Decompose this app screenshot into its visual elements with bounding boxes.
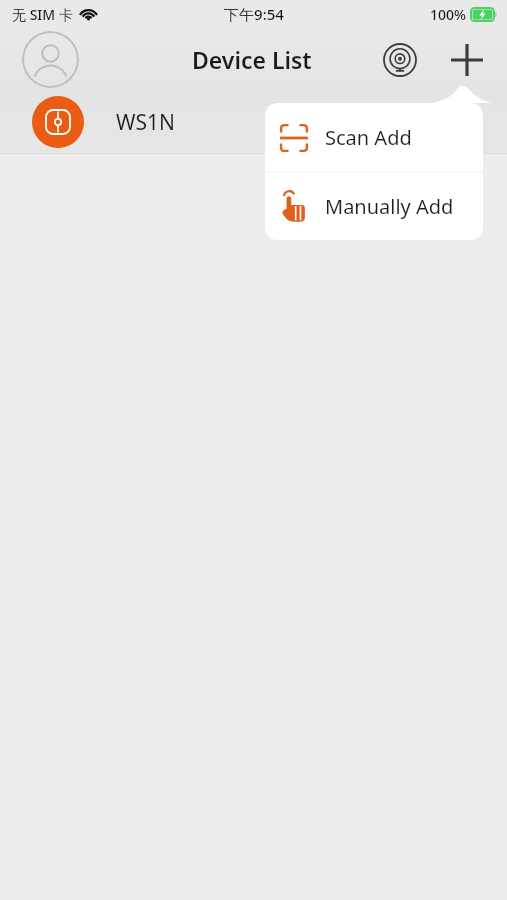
staticText: 下午9:54 [224, 4, 284, 24]
button[interactable]: Profile [22, 31, 79, 88]
button[interactable]: Scan Add [265, 103, 483, 172]
button[interactable]: WS1N [0, 91, 507, 153]
staticText: 100% [430, 5, 466, 24]
staticText: Device List [192, 44, 312, 75]
staticText: Scan Add [325, 124, 412, 151]
staticText: WS1N [116, 108, 176, 137]
staticText: Manually Add [325, 193, 454, 220]
staticText: 无 SIM 卡 [12, 5, 73, 24]
button[interactable]: Camera [378, 38, 422, 82]
button[interactable]: Manually Add [265, 172, 483, 240]
button[interactable]: Add device [443, 36, 491, 84]
